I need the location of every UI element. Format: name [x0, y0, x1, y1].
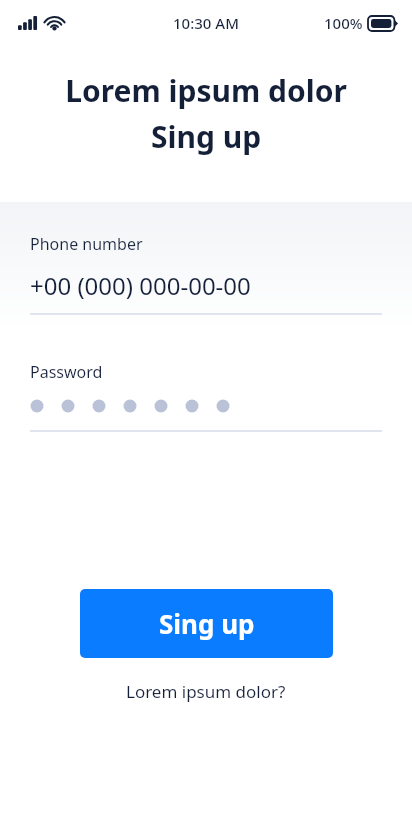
- staticText: Phone number: [30, 233, 143, 255]
- staticText: 100%: [324, 13, 363, 33]
- staticText: Sing up: [159, 606, 255, 641]
- staticText: Lorem ipsum dolor Sing up: [20, 70, 392, 157]
- button[interactable]: Sing up: [80, 589, 333, 658]
- staticText: Password: [30, 361, 103, 383]
- button[interactable]: Lorem ipsum dolor?: [118, 676, 294, 707]
- staticText: Lorem ipsum dolor?: [126, 680, 286, 703]
- staticText: 10:30 AM: [173, 13, 239, 33]
- button[interactable]: +00 (000) 000-00-00: [30, 269, 382, 302]
- staticText: +00 (000) 000-00-00: [30, 269, 251, 302]
- button[interactable]: Password: [30, 393, 382, 419]
